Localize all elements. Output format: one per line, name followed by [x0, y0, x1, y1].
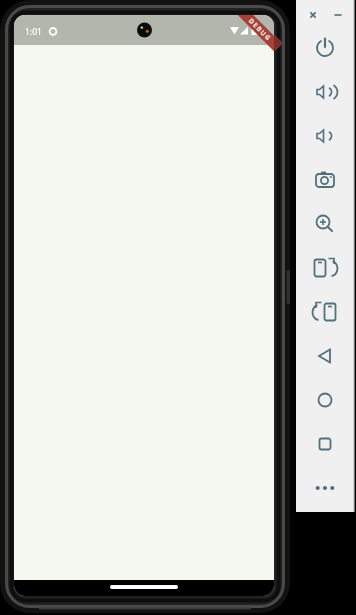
button[interactable]: [307, 162, 343, 198]
button[interactable]: [330, 7, 346, 23]
button[interactable]: [307, 338, 343, 374]
button[interactable]: [307, 250, 343, 286]
button[interactable]: [307, 470, 343, 506]
staticText: DEBUG: [247, 16, 274, 43]
button[interactable]: [305, 7, 321, 23]
button[interactable]: [307, 382, 343, 418]
button[interactable]: [307, 294, 343, 330]
button[interactable]: [307, 30, 343, 66]
button[interactable]: [307, 74, 343, 110]
staticText: 1:01: [25, 26, 42, 38]
button[interactable]: [307, 426, 343, 462]
button[interactable]: [307, 206, 343, 242]
button[interactable]: [307, 118, 343, 154]
